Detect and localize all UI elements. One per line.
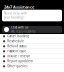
button[interactable]: Invoice / receipt xyxy=(0,54,64,59)
button[interactable]: Refund status xyxy=(0,44,64,49)
staticText: Payment issue xyxy=(7,49,26,53)
staticText: Chat with us xyxy=(11,26,28,29)
staticText: Need help with xyxy=(4,12,27,15)
staticText: Other queries xyxy=(7,64,27,68)
staticText: We reply instantly xyxy=(11,30,35,33)
staticText: 24x7 Assistance xyxy=(4,4,34,10)
button[interactable]: Payment issue xyxy=(0,49,64,54)
staticText: Report a problem xyxy=(7,59,32,63)
staticText: your booking? xyxy=(4,16,24,19)
button[interactable]: Reschedule xyxy=(0,39,64,44)
button[interactable]: Cancel booking xyxy=(0,34,64,39)
staticText: Invoice / receipt xyxy=(7,54,30,58)
staticText: Refund status xyxy=(7,44,26,48)
staticText: Cancel booking xyxy=(7,34,29,38)
button[interactable]: Other queries xyxy=(0,64,64,69)
button[interactable]: Report a problem xyxy=(0,59,64,64)
staticText: Reschedule xyxy=(7,39,24,43)
